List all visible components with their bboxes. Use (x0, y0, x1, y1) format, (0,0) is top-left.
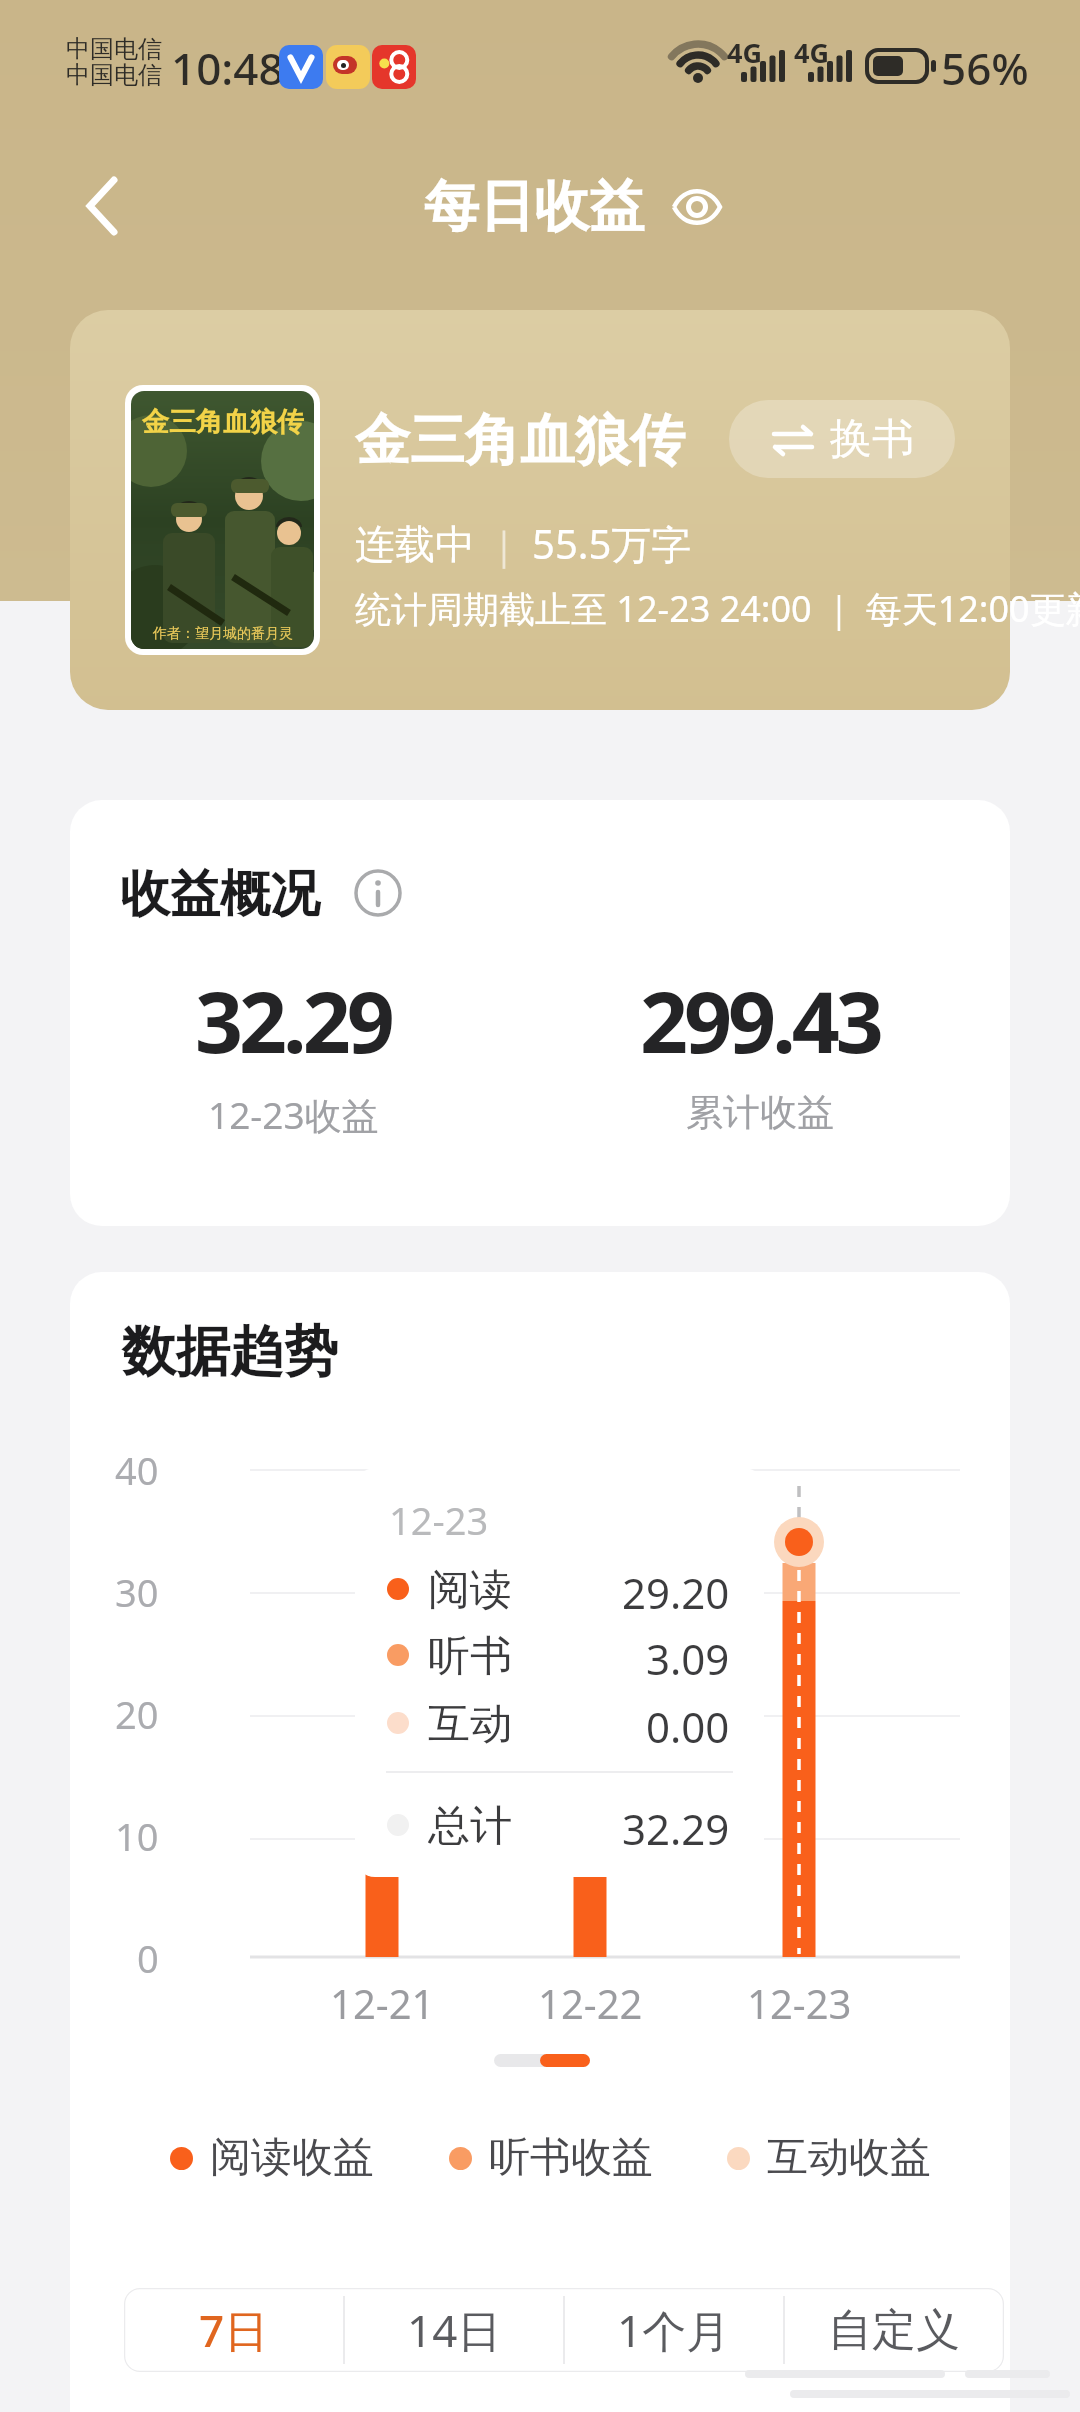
button[interactable] (672, 186, 722, 228)
staticText: 12-23 (747, 1976, 852, 2030)
button[interactable] (84, 176, 120, 236)
staticText: 收益概况 (120, 863, 320, 926)
staticText: 0 (137, 1932, 159, 1984)
staticText: 金三角血狼传 (142, 405, 304, 439)
staticText: 10:48 (171, 38, 284, 98)
staticText: 连载中 (355, 519, 475, 569)
staticText: 3.09 (646, 1630, 730, 1680)
staticText: 56% (941, 38, 1029, 98)
button[interactable]: 换书 (729, 400, 955, 478)
staticText: 32.29 (622, 1800, 730, 1850)
staticText: 互动收益 (767, 2132, 931, 2184)
staticText: 55.5万字 (532, 516, 692, 571)
staticText: 7日 (199, 2300, 269, 2360)
button[interactable]: 金三角血狼传 (70, 310, 1010, 710)
staticText: 0.00 (646, 1698, 730, 1748)
staticText: 听书收益 (489, 2132, 653, 2184)
staticText: 12-21 (330, 1976, 435, 2030)
staticText: 阅读 (428, 1564, 512, 1614)
staticText: 12-22 (538, 1976, 643, 2030)
staticText: 40 (115, 1444, 159, 1496)
staticText: 29.20 (622, 1564, 730, 1614)
button[interactable]: 自定义 (784, 2288, 1004, 2372)
staticText: 12-23 (389, 1494, 489, 1546)
staticText: 20 (115, 1688, 159, 1740)
staticText: 累计收益 (686, 1089, 834, 1136)
staticText: 1个月 (617, 2300, 731, 2360)
button[interactable]: 1个月 (564, 2288, 784, 2372)
staticText: 32.29 (195, 963, 391, 1077)
staticText: 4G (794, 34, 829, 71)
staticText: 自定义 (828, 2303, 960, 2358)
staticText: 听书 (428, 1630, 512, 1680)
staticText: 总计 (428, 1800, 512, 1850)
staticText: ｜ (475, 518, 532, 570)
staticText: 每日收益 (424, 172, 644, 241)
staticText: 14日 (407, 2300, 502, 2360)
staticText: 4G (727, 34, 762, 71)
staticText: 阅读收益 (210, 2132, 374, 2184)
staticText: 299.43 (640, 963, 880, 1077)
button[interactable]: 14日 (344, 2288, 564, 2372)
staticText: 互动 (428, 1698, 512, 1748)
staticText: 作者：望月城的番月灵 (153, 625, 293, 643)
staticText: 金三角血狼传 (355, 406, 685, 475)
staticText: 12-23收益 (208, 1089, 379, 1140)
staticText: 数据趋势 (122, 1318, 338, 1386)
staticText: 统计周期截止至 12-23 24:00 ｜ 每天12:00更新 (355, 584, 1080, 633)
staticText: 30 (115, 1566, 159, 1618)
staticText: 中国电信 中国电信 (66, 34, 162, 91)
button[interactable]: 7日 (124, 2288, 344, 2372)
button[interactable] (354, 869, 402, 917)
staticText: 10 (115, 1810, 159, 1862)
staticText: 换书 (830, 413, 914, 466)
